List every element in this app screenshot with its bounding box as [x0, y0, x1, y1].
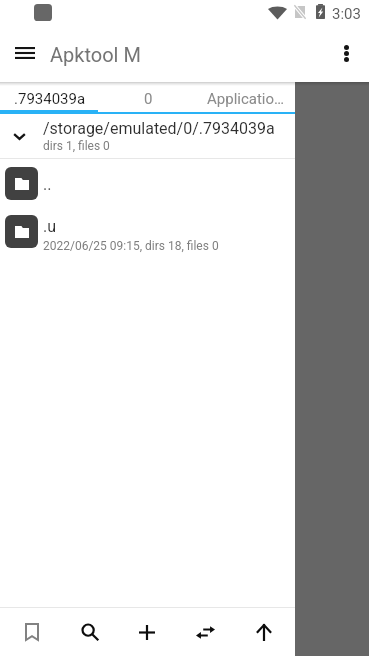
staticText: 0: [144, 90, 153, 108]
button[interactable]: .7934039a: [0, 82, 99, 114]
staticText: 2022/06/25 09:15, dirs 18, files 0: [43, 239, 219, 253]
button[interactable]: 0: [99, 82, 197, 114]
button[interactable]: Search: [66, 608, 114, 656]
button[interactable]: More options: [323, 32, 369, 78]
button[interactable]: Transfer: [181, 608, 229, 656]
button[interactable]: Bookmarks: [8, 608, 56, 656]
staticText: ..: [43, 175, 52, 194]
staticText: /storage/emulated/0/.7934039a: [43, 119, 275, 138]
staticText: 3:03: [332, 5, 361, 23]
staticText: .7934039a: [14, 90, 86, 108]
button[interactable]: ..: [0, 159, 295, 207]
staticText: dirs 1, files 0: [43, 139, 110, 153]
staticText: Apktool M: [50, 43, 141, 66]
button[interactable]: Applicatio…: [197, 82, 295, 114]
staticText: Applicatio…: [207, 90, 285, 108]
button[interactable]: Open navigation drawer: [2, 32, 48, 78]
button[interactable]: Go up: [239, 608, 287, 656]
staticText: .u: [43, 217, 57, 236]
button[interactable]: /storage/emulated/0/.7934039a: [0, 114, 295, 159]
button[interactable]: .u: [0, 207, 295, 255]
button[interactable]: Add: [123, 608, 171, 656]
